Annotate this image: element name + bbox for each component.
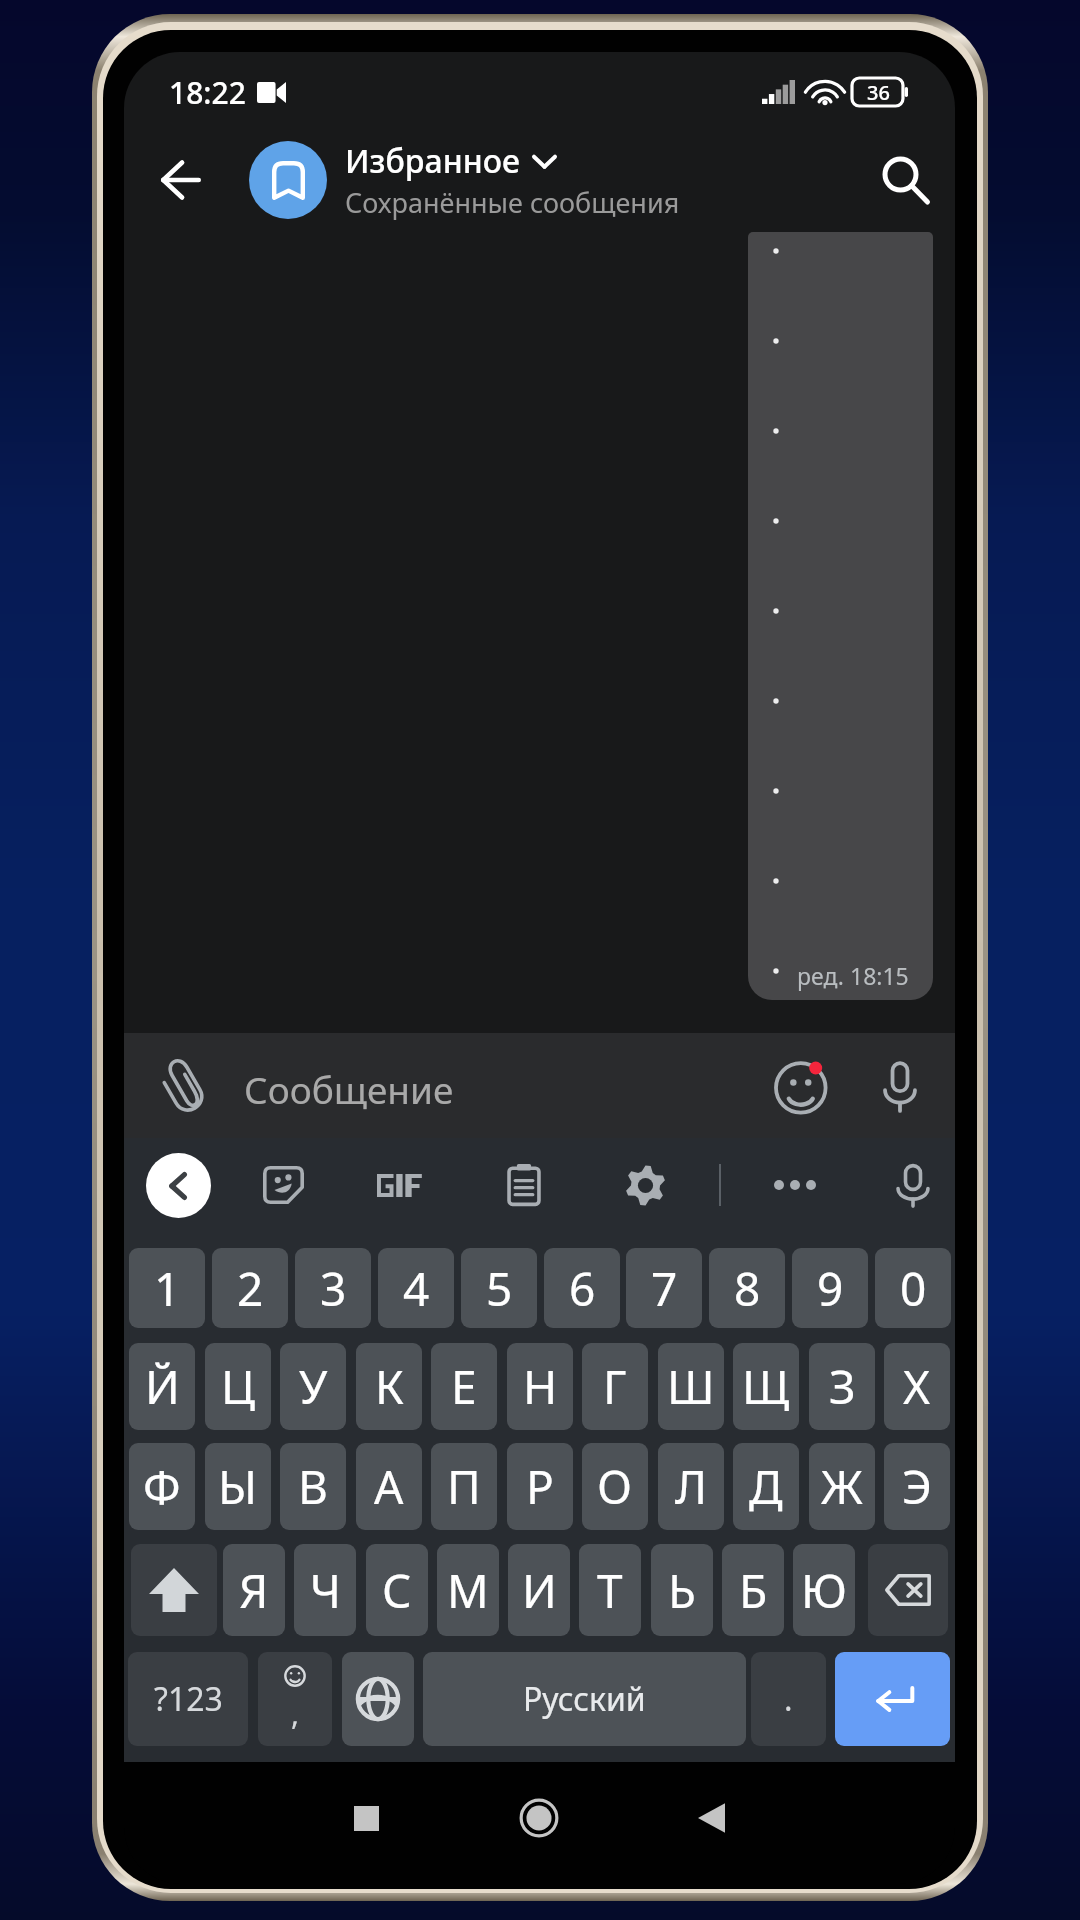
button[interactable]: 9 (792, 1248, 868, 1328)
button[interactable]: К (356, 1343, 422, 1430)
button[interactable]: Recents (326, 1778, 406, 1858)
staticText: Л (675, 1455, 708, 1518)
button[interactable]: Settings (607, 1147, 683, 1223)
staticText: 4 (403, 1257, 430, 1320)
button[interactable]: Stickers (245, 1147, 321, 1223)
button[interactable]: Period (751, 1652, 826, 1746)
button[interactable]: 0 (875, 1248, 951, 1328)
button[interactable]: Emoji and comma (258, 1652, 332, 1746)
staticText: Избранное (345, 139, 520, 183)
button[interactable]: Back (143, 142, 219, 218)
button[interactable]: М (437, 1544, 499, 1636)
button[interactable]: Ш (658, 1343, 724, 1430)
button[interactable]: Ф (129, 1443, 195, 1530)
button[interactable]: Е (431, 1343, 497, 1430)
button[interactable]: ред. 18:15 (748, 232, 933, 1000)
button[interactable]: Symbols (128, 1652, 248, 1746)
button[interactable]: Б (722, 1544, 784, 1636)
button[interactable]: О (582, 1443, 648, 1530)
staticText: Д (749, 1455, 783, 1518)
button[interactable]: Shift (131, 1544, 217, 1636)
button[interactable]: Clipboard (486, 1147, 562, 1223)
button[interactable]: Ы (205, 1443, 271, 1530)
button[interactable]: Л (658, 1443, 724, 1530)
button[interactable]: More options (757, 1147, 833, 1223)
button[interactable]: Т (579, 1544, 641, 1636)
button[interactable]: Backspace (868, 1544, 948, 1636)
staticText: ?123 (154, 1677, 223, 1721)
staticText: Ю (801, 1559, 847, 1622)
button[interactable]: Voice message (861, 1047, 939, 1125)
staticText: 36 (867, 79, 890, 106)
staticText: 18:22 (169, 72, 246, 113)
button[interactable]: Close panel (140, 1147, 216, 1223)
button[interactable]: Ч (294, 1544, 356, 1636)
staticText: Ш (667, 1355, 715, 1418)
staticText: Т (597, 1559, 623, 1622)
staticText: 6 (569, 1257, 596, 1320)
button[interactable]: Ц (205, 1343, 271, 1430)
staticText: Й (145, 1355, 180, 1418)
staticText: ред. 18:15 (797, 960, 909, 991)
staticText: Г (603, 1355, 627, 1418)
staticText: 1 (154, 1257, 181, 1320)
button[interactable]: Search (867, 142, 943, 218)
button[interactable]: 6 (544, 1248, 620, 1328)
button[interactable]: Ю (793, 1544, 855, 1636)
button[interactable]: Д (733, 1443, 799, 1530)
button[interactable]: Back (671, 1778, 751, 1858)
button[interactable]: 2 (212, 1248, 288, 1328)
button[interactable]: 7 (626, 1248, 702, 1328)
staticText: Б (739, 1559, 768, 1622)
staticText: З (829, 1355, 856, 1418)
button[interactable]: 5 (461, 1248, 537, 1328)
staticText: П (447, 1455, 481, 1518)
button[interactable]: Р (507, 1443, 573, 1530)
staticText: Я (239, 1559, 269, 1622)
button[interactable]: Enter (835, 1652, 950, 1746)
staticText: , (291, 1693, 300, 1734)
button[interactable]: У (280, 1343, 346, 1430)
button[interactable]: Ж (809, 1443, 875, 1530)
button[interactable]: 1 (129, 1248, 205, 1328)
staticText: И (522, 1559, 557, 1622)
button[interactable]: Й (129, 1343, 195, 1430)
button[interactable]: П (431, 1443, 497, 1530)
button[interactable]: Г (582, 1343, 648, 1430)
button[interactable]: С (366, 1544, 428, 1636)
button[interactable]: 4 (378, 1248, 454, 1328)
staticText: М (447, 1559, 489, 1622)
button[interactable]: Emoji (760, 1048, 836, 1124)
button[interactable]: И (508, 1544, 570, 1636)
button[interactable]: Home (499, 1778, 579, 1858)
staticText: Сохранённые сообщения (345, 184, 680, 221)
button[interactable]: Я (223, 1544, 285, 1636)
button[interactable]: Ь (651, 1544, 713, 1636)
button[interactable]: 8 (709, 1248, 785, 1328)
staticText: С (382, 1559, 412, 1622)
staticText: 5 (486, 1257, 513, 1320)
button[interactable]: Attach file (144, 1048, 220, 1124)
staticText: . (784, 1677, 793, 1721)
button[interactable]: В (280, 1443, 346, 1530)
staticText: А (374, 1455, 404, 1518)
button[interactable]: Х (884, 1343, 950, 1430)
button[interactable]: Избранное (249, 130, 680, 230)
staticText: 7 (651, 1257, 678, 1320)
button[interactable]: Н (507, 1343, 573, 1430)
button[interactable]: Щ (733, 1343, 799, 1430)
staticText: Сообщение (244, 1064, 454, 1114)
staticText: 2 (237, 1257, 264, 1320)
button[interactable]: GIF (366, 1147, 442, 1223)
button[interactable]: Voice input (875, 1147, 951, 1223)
button[interactable]: Э (884, 1443, 950, 1530)
staticText: Ь (668, 1559, 696, 1622)
button[interactable]: З (809, 1343, 875, 1430)
button[interactable]: Change language (342, 1652, 414, 1746)
staticText: У (299, 1355, 328, 1418)
staticText: О (597, 1455, 633, 1518)
button[interactable]: Space (423, 1652, 746, 1746)
button[interactable]: А (356, 1443, 422, 1530)
staticText: Ы (218, 1455, 258, 1518)
button[interactable]: 3 (295, 1248, 371, 1328)
